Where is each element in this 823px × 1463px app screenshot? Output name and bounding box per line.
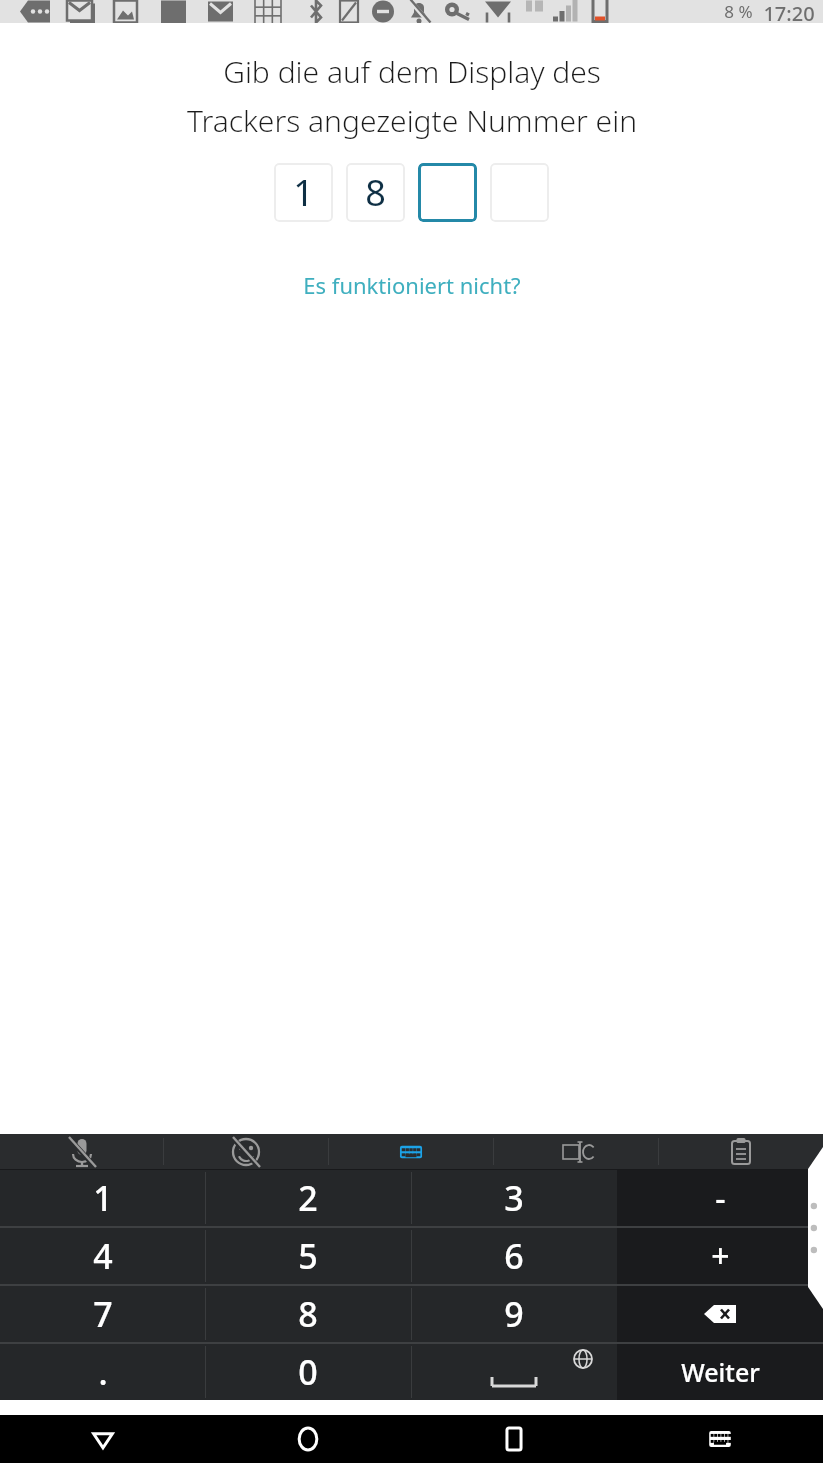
staticText: 7 [93,1291,113,1337]
button[interactable] [490,163,549,222]
staticText: 0 [298,1349,318,1395]
button[interactable]: Voice input disabled [0,1134,163,1169]
staticText: 4 [93,1233,113,1279]
button[interactable]: 9 [411,1286,617,1342]
staticText: Gib die auf dem Display des [223,51,601,92]
button[interactable]: Backspace [617,1286,823,1342]
button[interactable]: 4 [0,1228,205,1284]
staticText: 9 [504,1291,524,1337]
staticText: 3 [504,1175,524,1221]
button[interactable]: Switch keyboard [617,1415,823,1463]
staticText: + [711,1234,730,1278]
button[interactable]: 8 [346,163,405,222]
button[interactable]: Home [205,1415,411,1463]
staticText: 5 [298,1233,318,1279]
staticText: Trackers angezeigte Nummer ein [187,100,637,141]
button[interactable]: 2 [205,1170,411,1226]
button[interactable]: 1 [274,163,333,222]
button[interactable]: Text editing [494,1134,658,1169]
button[interactable]: + [617,1228,823,1284]
staticText: 17:20 [763,0,815,23]
staticText: 8 [298,1291,318,1337]
button[interactable]: Emoji disabled [164,1134,328,1169]
button[interactable]: Recent apps [411,1415,617,1463]
button[interactable]: Weiter [617,1344,823,1400]
staticText: 1 [93,1175,113,1221]
button[interactable]: Keyboard layout [329,1134,493,1169]
staticText: 1 [293,168,314,217]
button[interactable]: Clipboard [659,1134,823,1169]
staticText: 6 [504,1233,524,1279]
staticText: 2 [298,1175,318,1221]
button[interactable]: 1 [0,1170,205,1226]
button[interactable]: 6 [411,1228,617,1284]
staticText: Weiter [681,1355,760,1389]
button[interactable]: - [617,1170,823,1226]
button[interactable] [418,163,477,222]
button[interactable]: Space [411,1344,617,1400]
button[interactable]: Back [0,1415,205,1463]
staticText: 8 % [724,0,753,23]
button[interactable]: 3 [411,1170,617,1226]
button[interactable]: . [0,1344,205,1400]
button[interactable]: 0 [205,1344,411,1400]
button[interactable]: 5 [205,1228,411,1284]
button[interactable]: 8 [205,1286,411,1342]
staticText: - [715,1176,726,1220]
staticText: . [98,1349,108,1395]
button[interactable]: Es funktioniert nicht? [293,264,531,306]
button[interactable]: 7 [0,1286,205,1342]
button[interactable]: Resize keyboard [804,1147,823,1309]
staticText: Es funktioniert nicht? [303,270,521,300]
staticText: 8 [365,168,386,217]
